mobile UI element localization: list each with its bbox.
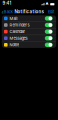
button[interactable]: Mail bbox=[2, 15, 56, 21]
button[interactable]: Edit bbox=[48, 9, 54, 14]
staticText: Notes bbox=[9, 42, 19, 47]
staticText: ‹ bbox=[1, 8, 3, 15]
staticText: Messages bbox=[9, 36, 27, 41]
staticText: 9:41 bbox=[3, 1, 12, 6]
staticText: ▲ bbox=[45, 1, 49, 5]
button[interactable]: Calendar bbox=[2, 28, 56, 35]
staticText: Mail bbox=[9, 16, 17, 21]
staticText: Reminders bbox=[9, 23, 29, 27]
button[interactable]: ‹ bbox=[1, 8, 13, 15]
button[interactable]: Reminders bbox=[2, 22, 56, 28]
staticText: Notifications bbox=[14, 9, 43, 14]
button[interactable]: Messages bbox=[2, 35, 56, 41]
staticText: Back bbox=[4, 9, 13, 14]
staticText: Edit bbox=[48, 9, 54, 14]
button[interactable]: Notes bbox=[2, 42, 56, 48]
staticText: Calendar bbox=[9, 29, 25, 34]
